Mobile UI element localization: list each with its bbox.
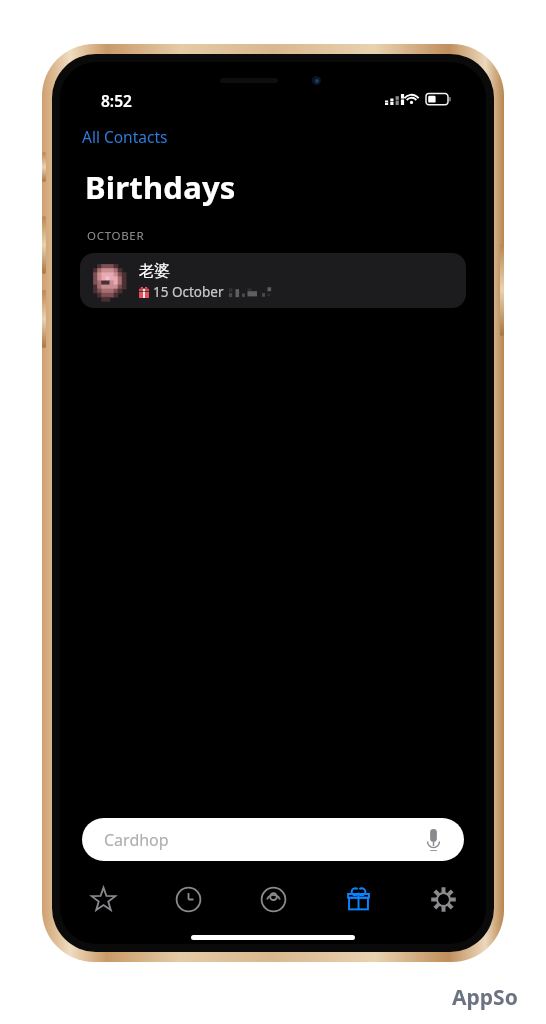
button[interactable]: Voice search bbox=[420, 827, 446, 853]
staticText: 8:52 bbox=[101, 90, 132, 111]
button[interactable]: Recents bbox=[146, 874, 231, 924]
staticText: Cardhop bbox=[104, 829, 420, 851]
button[interactable]: Birthdays bbox=[316, 874, 401, 924]
staticText: Birthdays bbox=[85, 166, 236, 208]
button[interactable]: Favorites bbox=[60, 874, 146, 924]
button[interactable]: Cardhop bbox=[82, 818, 464, 861]
staticText: AppSo bbox=[452, 983, 518, 1012]
staticText: OCTOBER bbox=[87, 228, 145, 244]
button[interactable]: 老婆 bbox=[80, 253, 466, 308]
button[interactable]: All Contacts bbox=[82, 124, 168, 149]
staticText: 老婆 bbox=[139, 261, 170, 281]
button[interactable]: Settings bbox=[401, 874, 486, 924]
staticText: 15 October bbox=[153, 283, 224, 301]
button[interactable]: Contacts bbox=[231, 874, 316, 924]
staticText: All Contacts bbox=[82, 126, 168, 147]
